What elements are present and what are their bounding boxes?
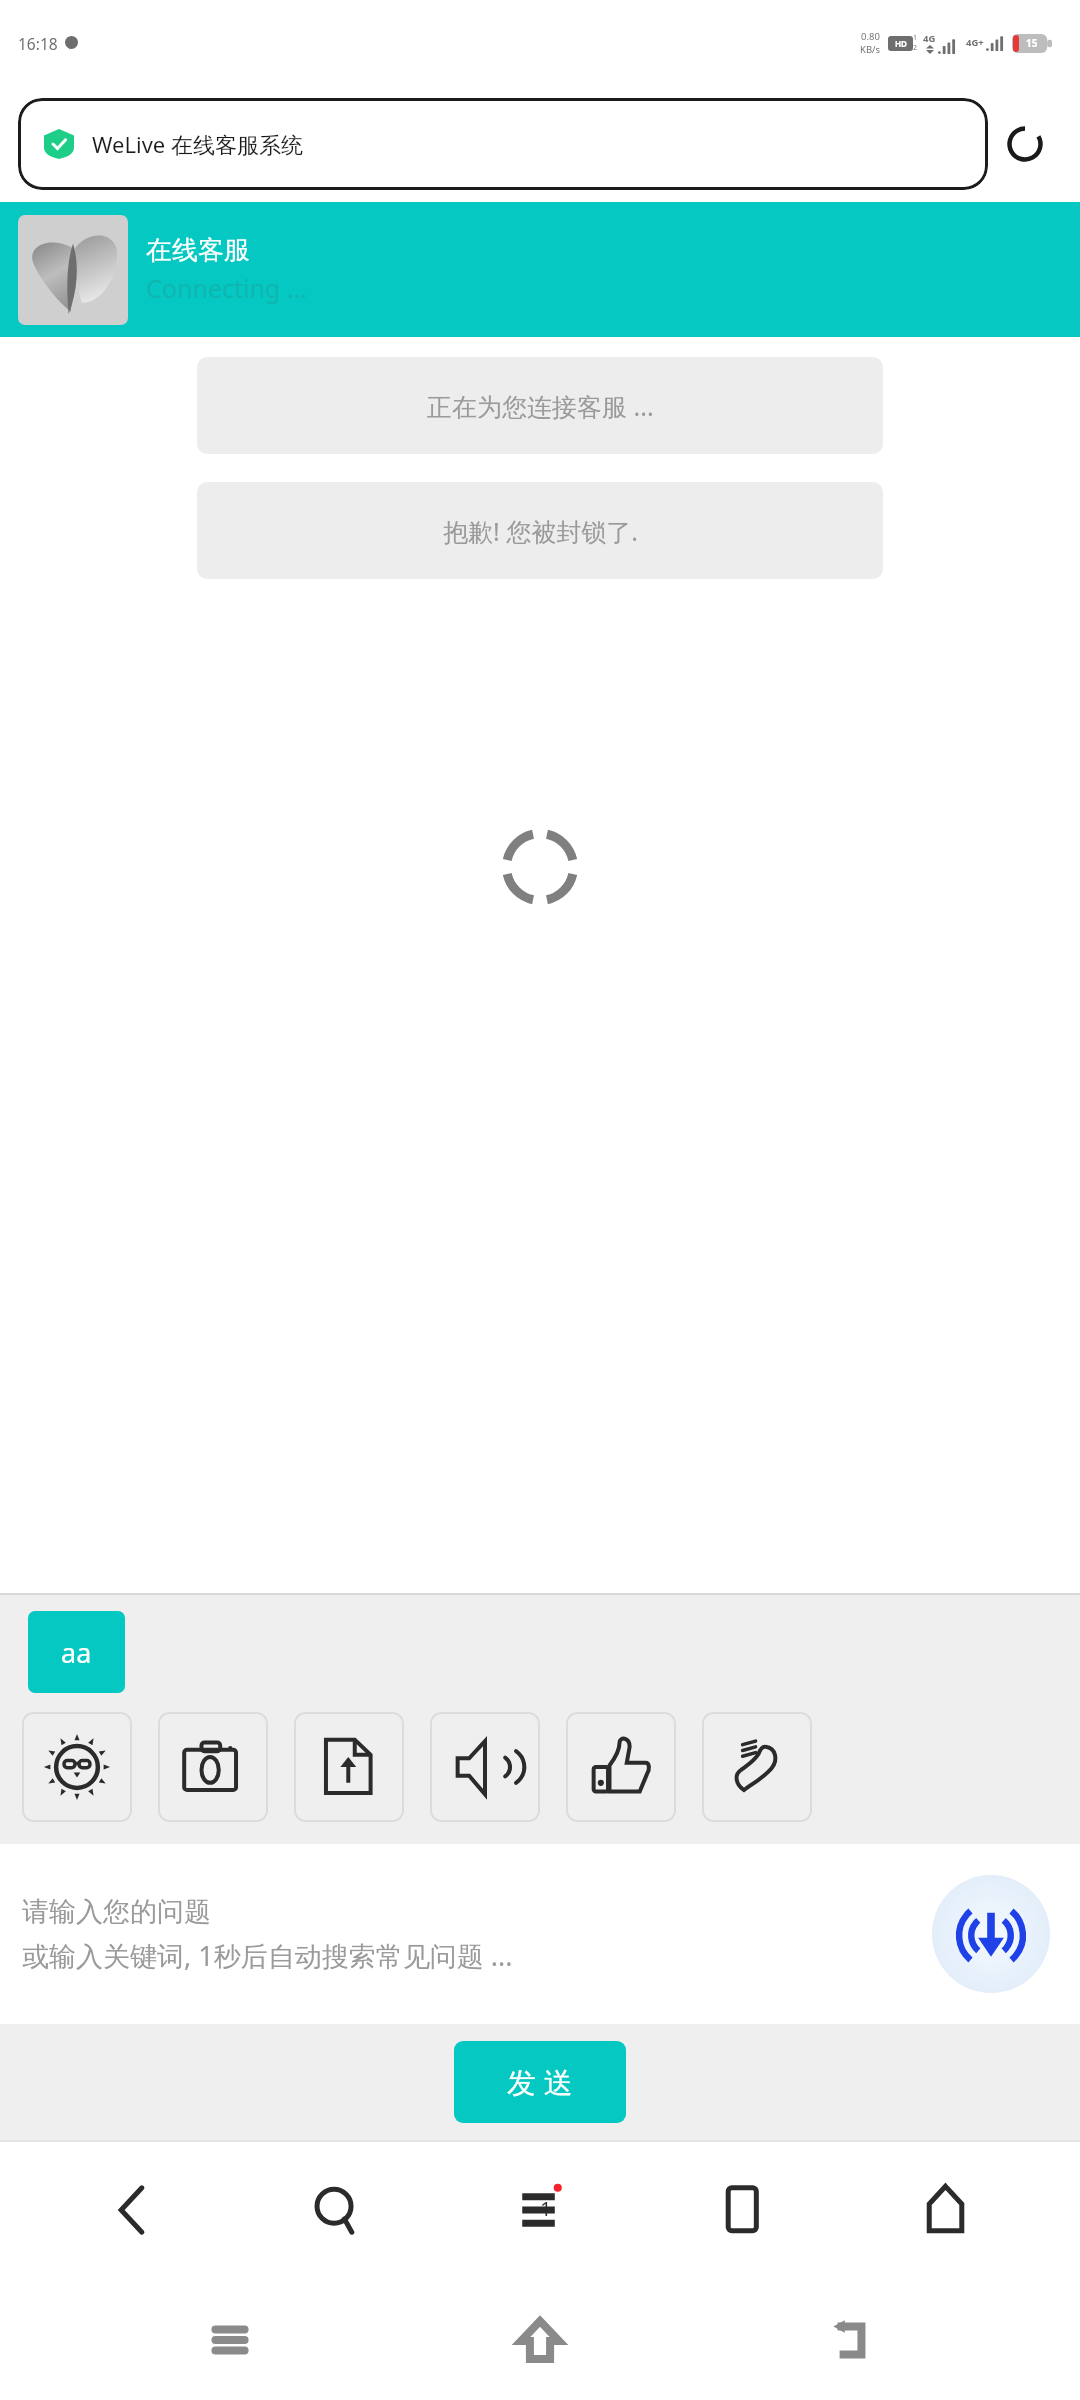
- staticText: 4G+: [966, 36, 984, 49]
- staticText: 2: [913, 43, 918, 53]
- staticText: 15: [1026, 36, 1038, 50]
- staticText: KB/s: [860, 43, 881, 56]
- button[interactable]: Search: [267, 2140, 407, 2280]
- button[interactable]: Back: [63, 2140, 203, 2280]
- button[interactable]: WeLive 在线客服系统: [18, 98, 988, 190]
- button[interactable]: 发 送: [454, 2041, 626, 2123]
- button[interactable]: 正在为您连接客服 ...: [197, 357, 883, 454]
- staticText: 请输入您的问题: [22, 1895, 211, 1929]
- staticText: 发 送: [507, 2062, 573, 2102]
- button[interactable]: Camera: [158, 1712, 268, 1822]
- button[interactable]: Call: [702, 1712, 812, 1822]
- staticText: 16:18: [18, 33, 58, 54]
- button[interactable]: Menu: [470, 2140, 610, 2280]
- button[interactable]: Recents: [150, 2280, 310, 2400]
- button[interactable]: Upload file: [294, 1712, 404, 1822]
- button[interactable]: Voice input: [932, 1875, 1050, 1993]
- staticText: Connecting ...: [146, 271, 307, 305]
- button[interactable]: 抱歉! 您被封锁了.: [197, 482, 883, 579]
- staticText: 或输入关键词, 1秒后自动搜索常见问题 ...: [22, 1937, 513, 1974]
- staticText: 4G: [923, 32, 936, 45]
- staticText: 1: [540, 2195, 552, 2222]
- staticText: 0.80: [861, 30, 880, 43]
- button[interactable]: Tabs: [673, 2140, 813, 2280]
- button[interactable]: Emoji: [22, 1712, 132, 1822]
- staticText: aa: [61, 1634, 92, 1671]
- button[interactable]: Home: [877, 2140, 1017, 2280]
- button[interactable]: aa: [28, 1611, 125, 1693]
- button[interactable]: Back: [770, 2280, 930, 2400]
- staticText: WeLive 在线客服系统: [92, 129, 303, 159]
- staticText: HD: [895, 38, 907, 49]
- staticText: 正在为您连接客服 ...: [427, 389, 654, 423]
- button[interactable]: Like: [566, 1712, 676, 1822]
- button[interactable]: Reload: [988, 86, 1062, 202]
- button[interactable]: Home: [460, 2280, 620, 2400]
- staticText: 在线客服: [146, 234, 250, 267]
- staticText: 抱歉! 您被封锁了.: [443, 514, 638, 548]
- button[interactable]: Voice: [430, 1712, 540, 1822]
- staticText: 1: [913, 33, 918, 43]
